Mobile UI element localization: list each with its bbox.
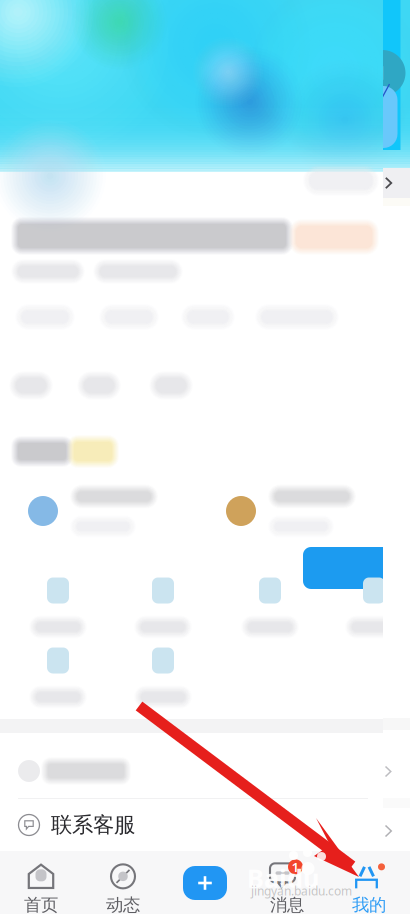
button[interactable] — [28, 584, 88, 632]
button[interactable] — [28, 494, 178, 528]
staticText: 首页 — [24, 894, 58, 914]
button[interactable] — [240, 584, 300, 632]
button[interactable] — [133, 584, 193, 632]
button[interactable]: 动态 — [82, 851, 164, 914]
staticText: 消息 — [270, 894, 304, 914]
button[interactable]: 我的 — [328, 851, 410, 914]
staticText: jingyan.baidu.com — [251, 883, 352, 899]
staticText: 我的 — [352, 894, 386, 914]
staticText: Baidu — [247, 861, 319, 895]
button[interactable]: 首页 — [0, 851, 82, 914]
button[interactable] — [28, 654, 88, 702]
staticText: 联系客服 — [51, 812, 135, 838]
button[interactable]: 联系客服 — [0, 800, 383, 850]
button[interactable] — [226, 494, 376, 528]
staticText: 1 — [291, 858, 299, 876]
button[interactable]: 发布 — [164, 851, 246, 914]
button[interactable] — [133, 654, 193, 702]
button[interactable] — [344, 584, 404, 632]
button[interactable]: 1 — [246, 851, 328, 914]
staticText: 动态 — [106, 894, 140, 914]
